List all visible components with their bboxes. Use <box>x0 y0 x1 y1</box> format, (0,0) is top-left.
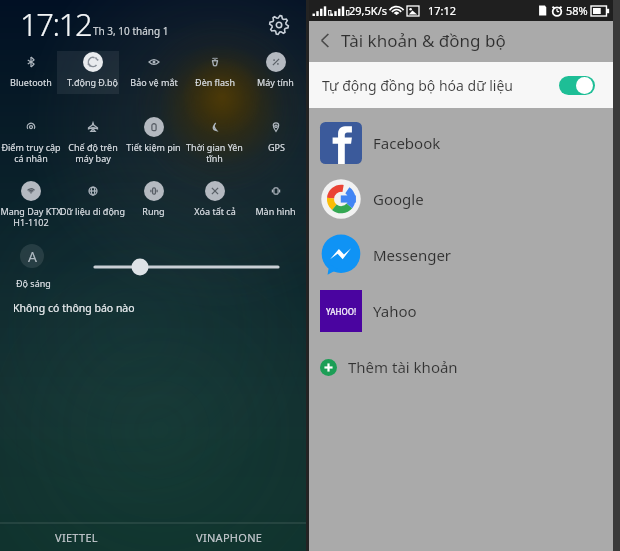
button[interactable]: Google <box>309 171 613 227</box>
staticText: Thêm tài khoản <box>348 357 458 377</box>
staticText: GPS <box>268 141 285 153</box>
button[interactable]: Back <box>309 24 341 56</box>
button[interactable]: YAHOO! <box>309 283 613 339</box>
staticText: VINAPHONE <box>196 530 263 545</box>
button[interactable]: VINAPHONE <box>153 523 306 551</box>
button[interactable]: Đèn flash <box>184 52 245 110</box>
staticText: Máy tính <box>257 76 294 88</box>
staticText: Độ sáng <box>16 277 51 289</box>
staticText: 17:12 <box>20 3 92 45</box>
staticText: Rung <box>142 205 165 217</box>
staticText: Google <box>373 189 424 209</box>
staticText: Tự động đồng bộ hóa dữ liệu <box>322 76 513 95</box>
button[interactable]: Màn hình <box>245 181 306 239</box>
staticText: Màn hình <box>255 205 296 217</box>
button[interactable]: Settings <box>262 8 296 42</box>
staticText: Điểm truy cập cá nhân <box>1 141 61 164</box>
button[interactable]: Mang Day KTX H1-1102 <box>0 181 62 239</box>
button[interactable]: Điểm truy cập cá nhân <box>0 117 62 175</box>
button[interactable]: GPS <box>245 117 306 175</box>
staticText: 58% <box>566 3 588 18</box>
staticText: Yahoo <box>373 301 417 321</box>
button[interactable]: Auto sync toggle <box>559 76 595 95</box>
staticText: Bluetooth <box>10 76 52 88</box>
button[interactable]: Máy tính <box>245 52 306 110</box>
staticText: Thời gian Yên tĩnh <box>186 141 243 164</box>
staticText: Facebook <box>373 133 441 153</box>
staticText: Tiết kiệm pin <box>126 141 181 153</box>
staticText: VIETTEL <box>55 530 98 545</box>
button[interactable]: Xóa tất cả <box>184 181 245 239</box>
button[interactable]: Rung <box>123 181 184 239</box>
staticText: A <box>28 247 37 266</box>
button[interactable]: Tiết kiệm pin <box>123 117 184 175</box>
staticText: YAHOO! <box>326 306 357 317</box>
staticText: Th 3, 10 tháng 1 <box>93 24 169 38</box>
staticText: Chế độ trên máy bay <box>68 141 118 164</box>
staticText: 17:12 <box>428 3 457 18</box>
button[interactable]: Thêm tài khoản <box>309 339 613 395</box>
staticText: Dữ liệu di động <box>60 205 125 217</box>
button[interactable]: Auto brightness <box>20 244 44 268</box>
button[interactable]: Thời gian Yên tĩnh <box>184 117 245 175</box>
staticText: Messenger <box>373 245 452 265</box>
button[interactable]: T.động Đ.bộ <box>62 52 123 110</box>
button[interactable]: Messenger <box>309 227 613 283</box>
staticText: 29,5K/s <box>349 3 387 18</box>
button[interactable]: Bluetooth <box>0 52 62 110</box>
staticText: Không có thông báo nào <box>13 301 135 315</box>
staticText: T.động Đ.bộ <box>67 76 118 88</box>
button[interactable]: Dữ liệu di động <box>62 181 123 239</box>
button[interactable]: Tự động đồng bộ hóa dữ liệu <box>309 62 613 108</box>
staticText: Tài khoản & đồng bộ <box>341 29 506 52</box>
staticText: Bảo vệ mắt <box>130 76 178 88</box>
button[interactable]: VIETTEL <box>0 523 153 551</box>
button[interactable]: Brightness slider <box>88 256 286 278</box>
staticText: Mang Day KTX H1-1102 <box>0 205 62 228</box>
button[interactable]: Bảo vệ mắt <box>123 52 184 110</box>
staticText: Đèn flash <box>195 76 235 88</box>
staticText: Xóa tất cả <box>194 205 236 217</box>
button[interactable]: Chế độ trên máy bay <box>62 117 123 175</box>
button[interactable]: Facebook <box>309 115 613 171</box>
